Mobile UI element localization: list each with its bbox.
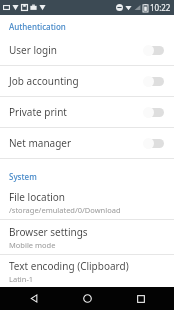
button[interactable]: File location xyxy=(0,185,174,219)
button[interactable]: Net manager xyxy=(0,128,174,158)
staticText: /storage/emulated/0/Download xyxy=(9,205,121,215)
button[interactable]: Job accounting xyxy=(0,66,174,96)
staticText: Mobile mode xyxy=(9,240,56,250)
button[interactable]: Text encoding (Clipboard) xyxy=(0,255,174,287)
button[interactable]: User login xyxy=(0,35,174,65)
staticText: File location xyxy=(9,190,66,204)
staticText: Private print xyxy=(9,105,143,119)
staticText: Job accounting xyxy=(9,74,143,88)
button[interactable]: Recent apps xyxy=(121,287,161,310)
staticText: Text encoding (Clipboard) xyxy=(9,259,129,273)
staticText: Net manager xyxy=(9,136,143,150)
button[interactable]: Private print xyxy=(0,97,174,127)
staticText: 10:22 xyxy=(150,2,171,13)
button[interactable]: Home xyxy=(67,287,107,310)
button[interactable]: Back xyxy=(14,287,54,310)
staticText: Authentication xyxy=(9,21,66,32)
staticText: User login xyxy=(9,43,143,57)
staticText: Latin-1 xyxy=(9,274,34,284)
staticText: Browser settings xyxy=(9,225,88,239)
staticText: System xyxy=(9,171,37,182)
button[interactable]: Browser settings xyxy=(0,220,174,254)
